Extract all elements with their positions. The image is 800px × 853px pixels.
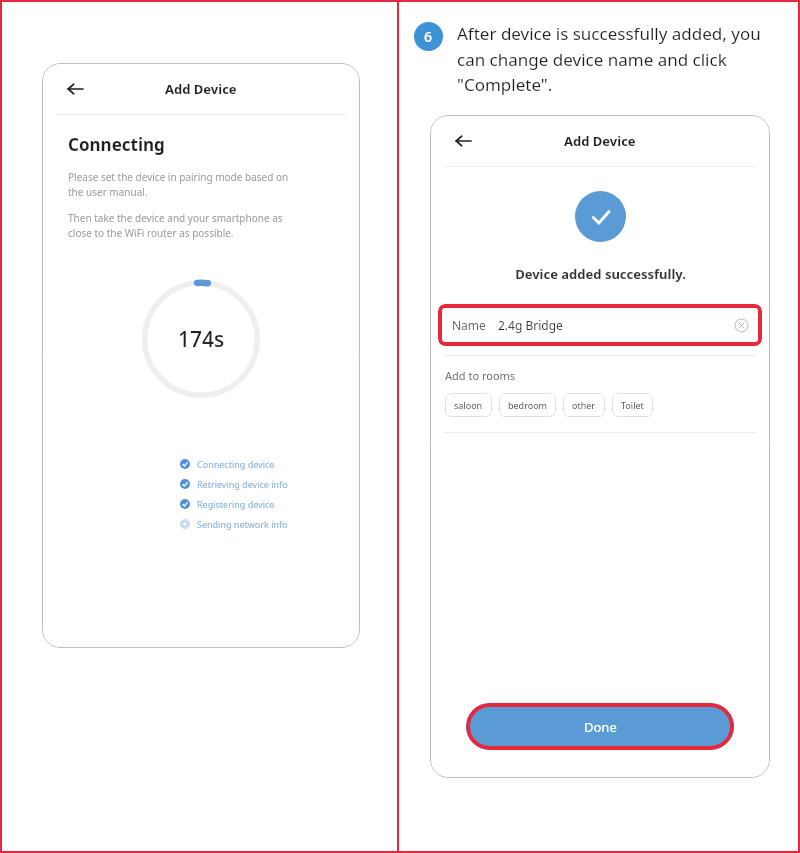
staticText: Then take the device and your smartphone… (68, 211, 283, 240)
staticText: Connecting device (197, 458, 275, 470)
staticText: saloon (454, 399, 483, 411)
button[interactable]: Toilet (612, 393, 653, 417)
staticText: Registering device (197, 498, 275, 510)
button[interactable]: Registering device (180, 494, 275, 514)
staticText: After device is successfully added, you … (457, 22, 782, 96)
staticText: 2.4g Bridge (498, 317, 563, 333)
staticText: 6 (424, 27, 433, 46)
button[interactable]: saloon (445, 393, 492, 417)
button[interactable]: Retrieving device info (180, 474, 288, 494)
button[interactable]: other (563, 393, 605, 417)
button[interactable]: Done (466, 703, 734, 750)
staticText: Connecting (68, 133, 165, 156)
button[interactable]: Name (438, 304, 762, 346)
staticText: Toilet (621, 399, 644, 411)
staticText: Add Device (564, 132, 636, 150)
staticText: Retrieving device info (197, 478, 288, 490)
button[interactable]: Back (450, 128, 476, 154)
button[interactable]: Sending network info (180, 514, 288, 534)
staticText: other (572, 399, 596, 411)
button[interactable]: Back (62, 76, 88, 102)
staticText: Done (584, 718, 617, 736)
staticText: Please set the device in pairing mode ba… (68, 170, 289, 199)
staticText: Sending network info (197, 518, 288, 530)
staticText: Name (452, 317, 486, 333)
button[interactable]: bedroom (499, 393, 556, 417)
staticText: bedroom (508, 399, 547, 411)
staticText: Add Device (165, 80, 237, 98)
staticText: Add to rooms (445, 368, 516, 383)
staticText: Device added successfully. (515, 265, 686, 283)
button[interactable]: Clear name (735, 319, 748, 332)
button[interactable]: Connecting device (180, 454, 275, 474)
staticText: 174s (178, 325, 225, 354)
